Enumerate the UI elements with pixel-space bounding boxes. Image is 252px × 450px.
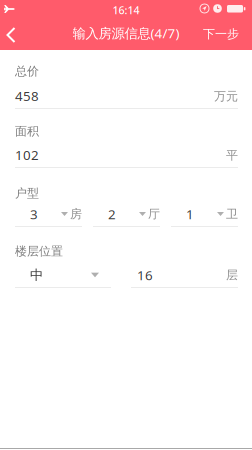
staticText: 平: [226, 148, 238, 163]
staticText: 万元: [214, 89, 238, 104]
staticText: 房: [70, 207, 82, 221]
staticText: 楼层位置: [15, 244, 63, 259]
staticText: 厅: [148, 207, 160, 221]
button[interactable]: 3: [15, 207, 82, 227]
staticText: 2: [108, 205, 116, 223]
button[interactable]: 下一步: [195, 19, 247, 49]
staticText: 户型: [15, 186, 39, 201]
button[interactable]: 2: [93, 207, 160, 227]
staticText: 102: [15, 146, 39, 164]
staticText: 卫: [226, 207, 238, 221]
staticText: 层: [226, 268, 238, 282]
button[interactable]: 中: [15, 268, 111, 288]
staticText: 1: [186, 205, 194, 223]
staticText: 中: [30, 267, 43, 283]
staticText: 下一步: [203, 27, 239, 41]
staticText: 16:14: [112, 3, 139, 17]
button[interactable]: Back: [0, 20, 27, 50]
staticText: 3: [30, 205, 38, 223]
staticText: 16: [137, 266, 153, 284]
staticText: 输入房源信息(4/7): [72, 24, 179, 42]
button[interactable]: 1: [171, 207, 238, 227]
staticText: 总价: [15, 64, 39, 79]
staticText: 458: [15, 87, 39, 105]
staticText: 面积: [15, 124, 39, 139]
